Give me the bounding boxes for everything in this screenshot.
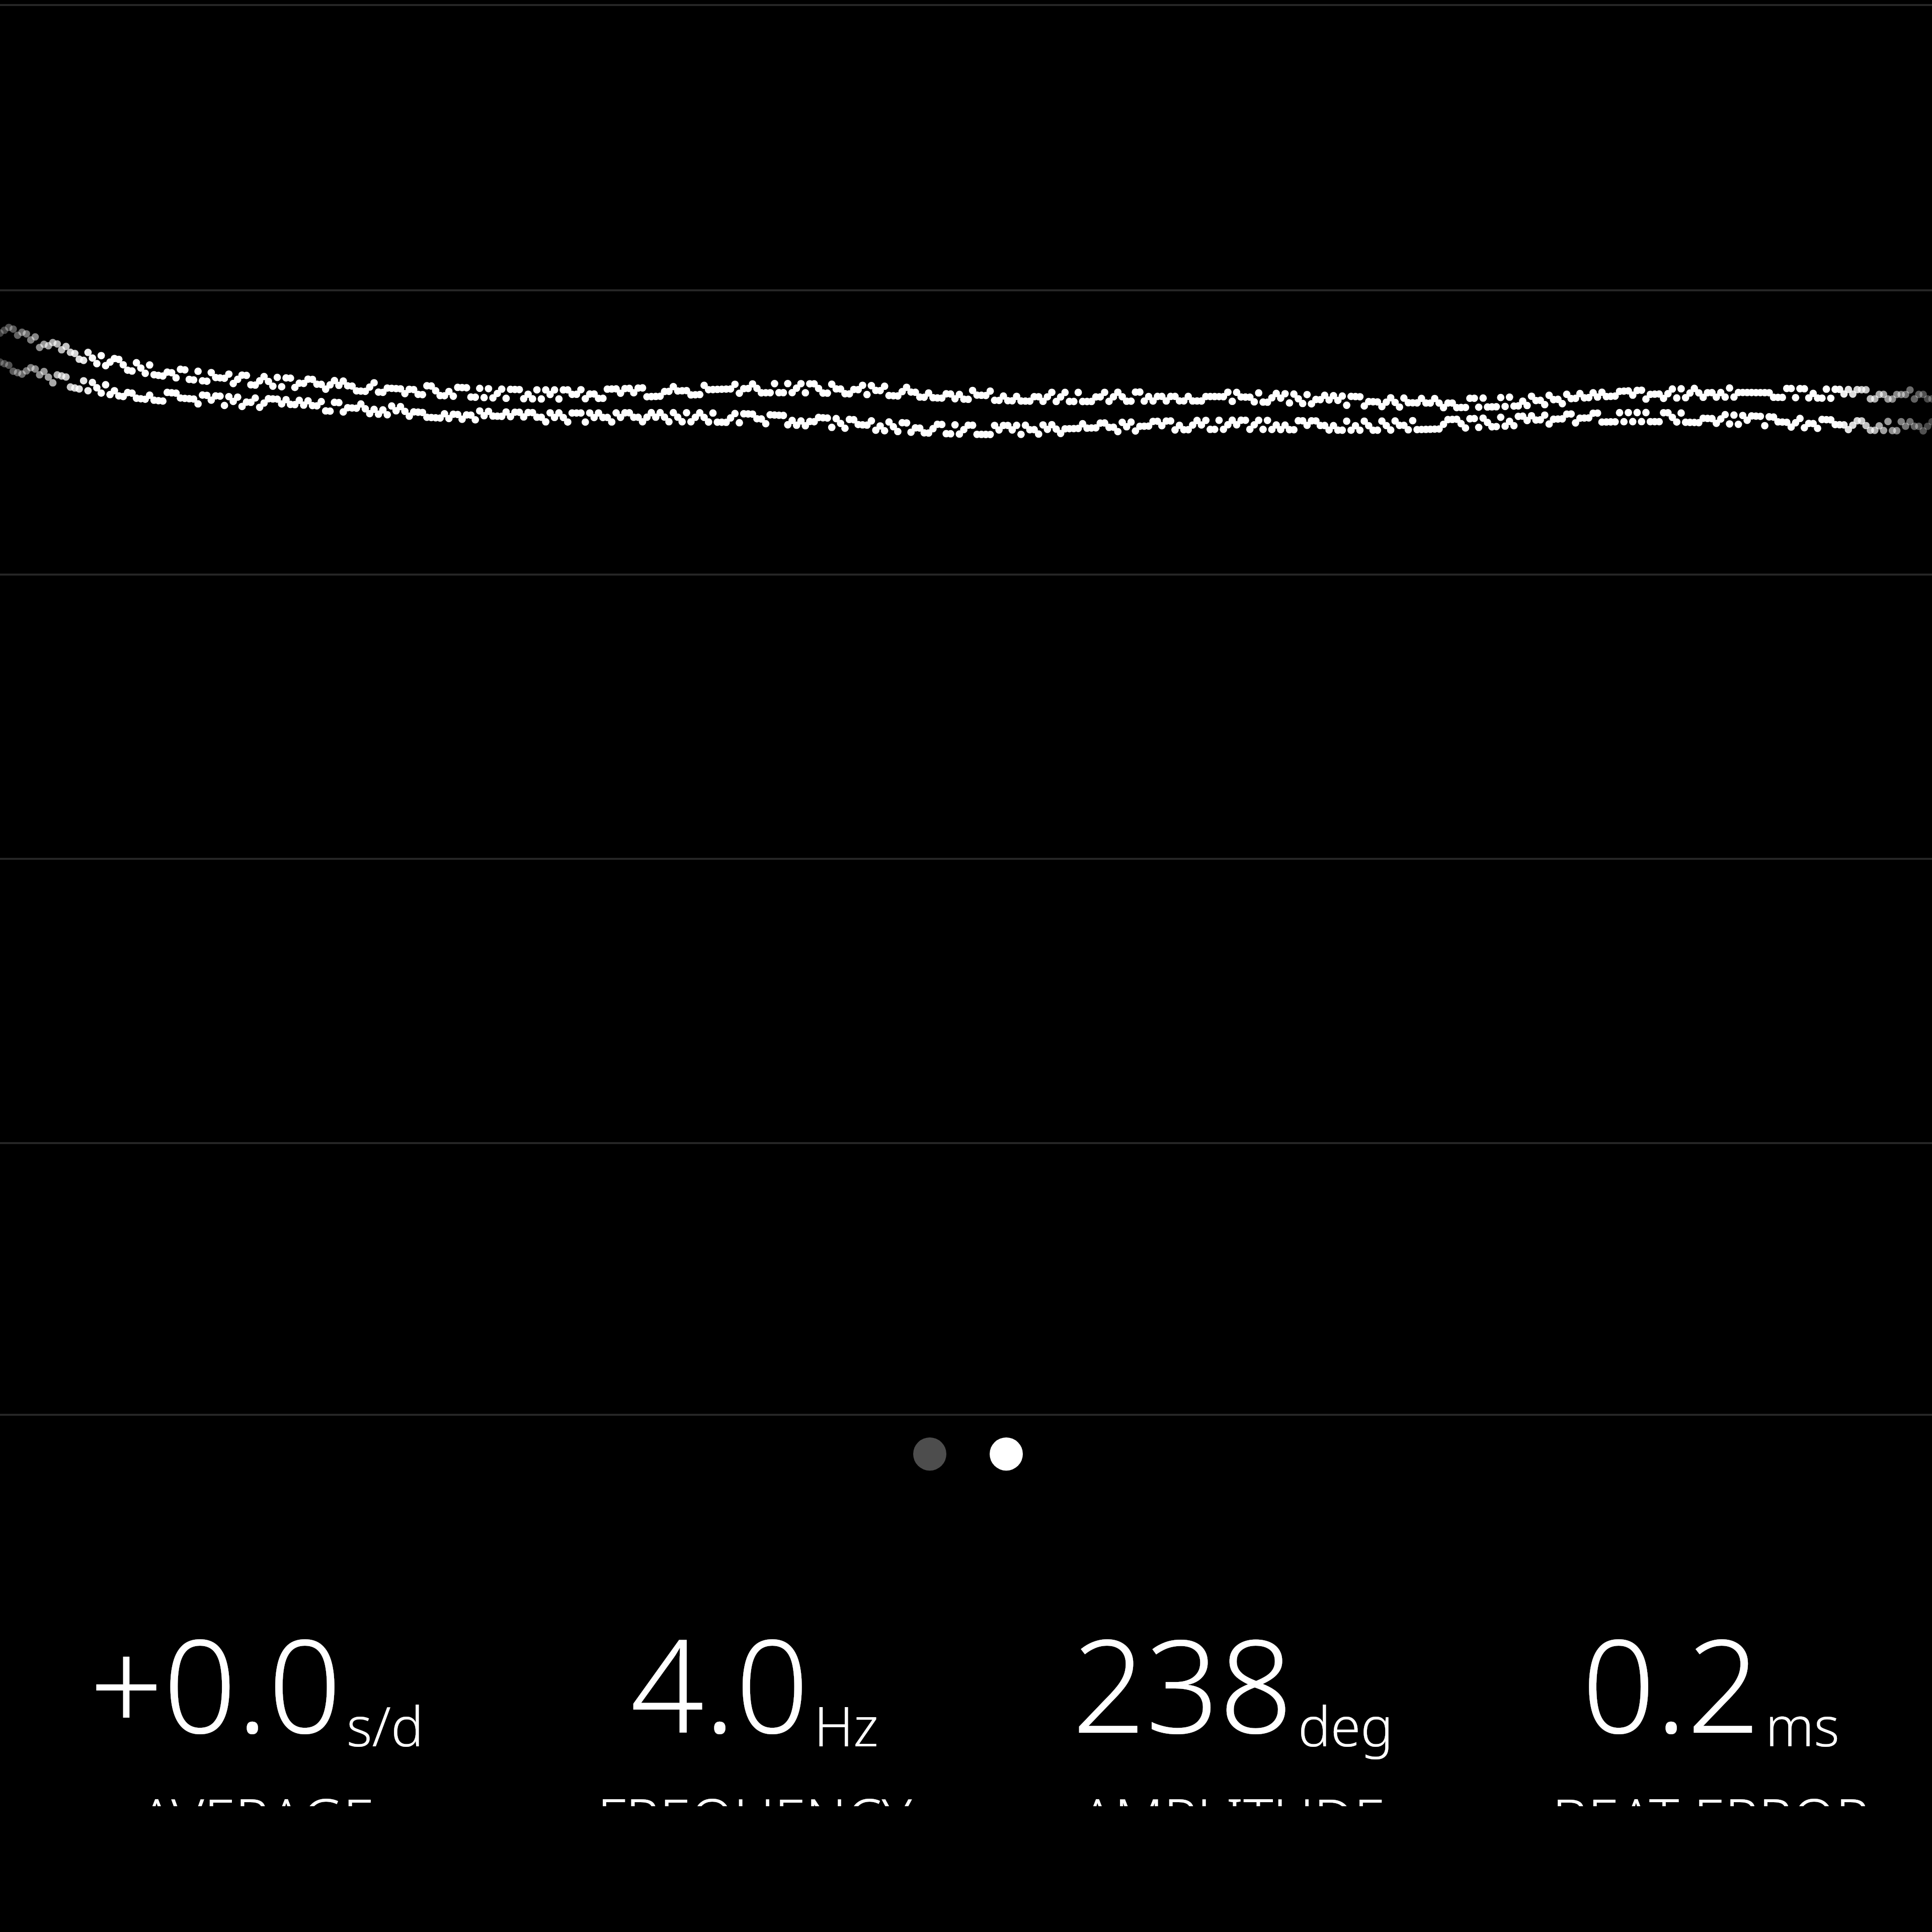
button[interactable]: 4.0 [503,1595,1006,1806]
staticText: ms [1765,1688,1839,1762]
button[interactable]: Page 1 [913,1437,946,1471]
staticText: FREQUENCY [597,1780,912,1806]
button[interactable]: 238 [981,1595,1484,1806]
staticText: s/d [347,1688,424,1762]
staticText: BEAT ERROR [1552,1780,1870,1806]
staticText: 238 [1072,1595,1293,1770]
staticText: 4.0 [630,1595,809,1770]
button[interactable]: 0.2 [1459,1595,1932,1806]
staticText: +0.0 [90,1595,342,1770]
staticText: AVERAGE [139,1780,374,1806]
button[interactable]: +0.0 [5,1595,508,1806]
staticText: deg [1298,1688,1394,1762]
staticText: 0.2 [1582,1595,1760,1770]
button[interactable]: Page 2 [990,1437,1023,1471]
staticText: Hz [814,1688,879,1762]
staticText: AMPLITUDE [1080,1780,1385,1806]
